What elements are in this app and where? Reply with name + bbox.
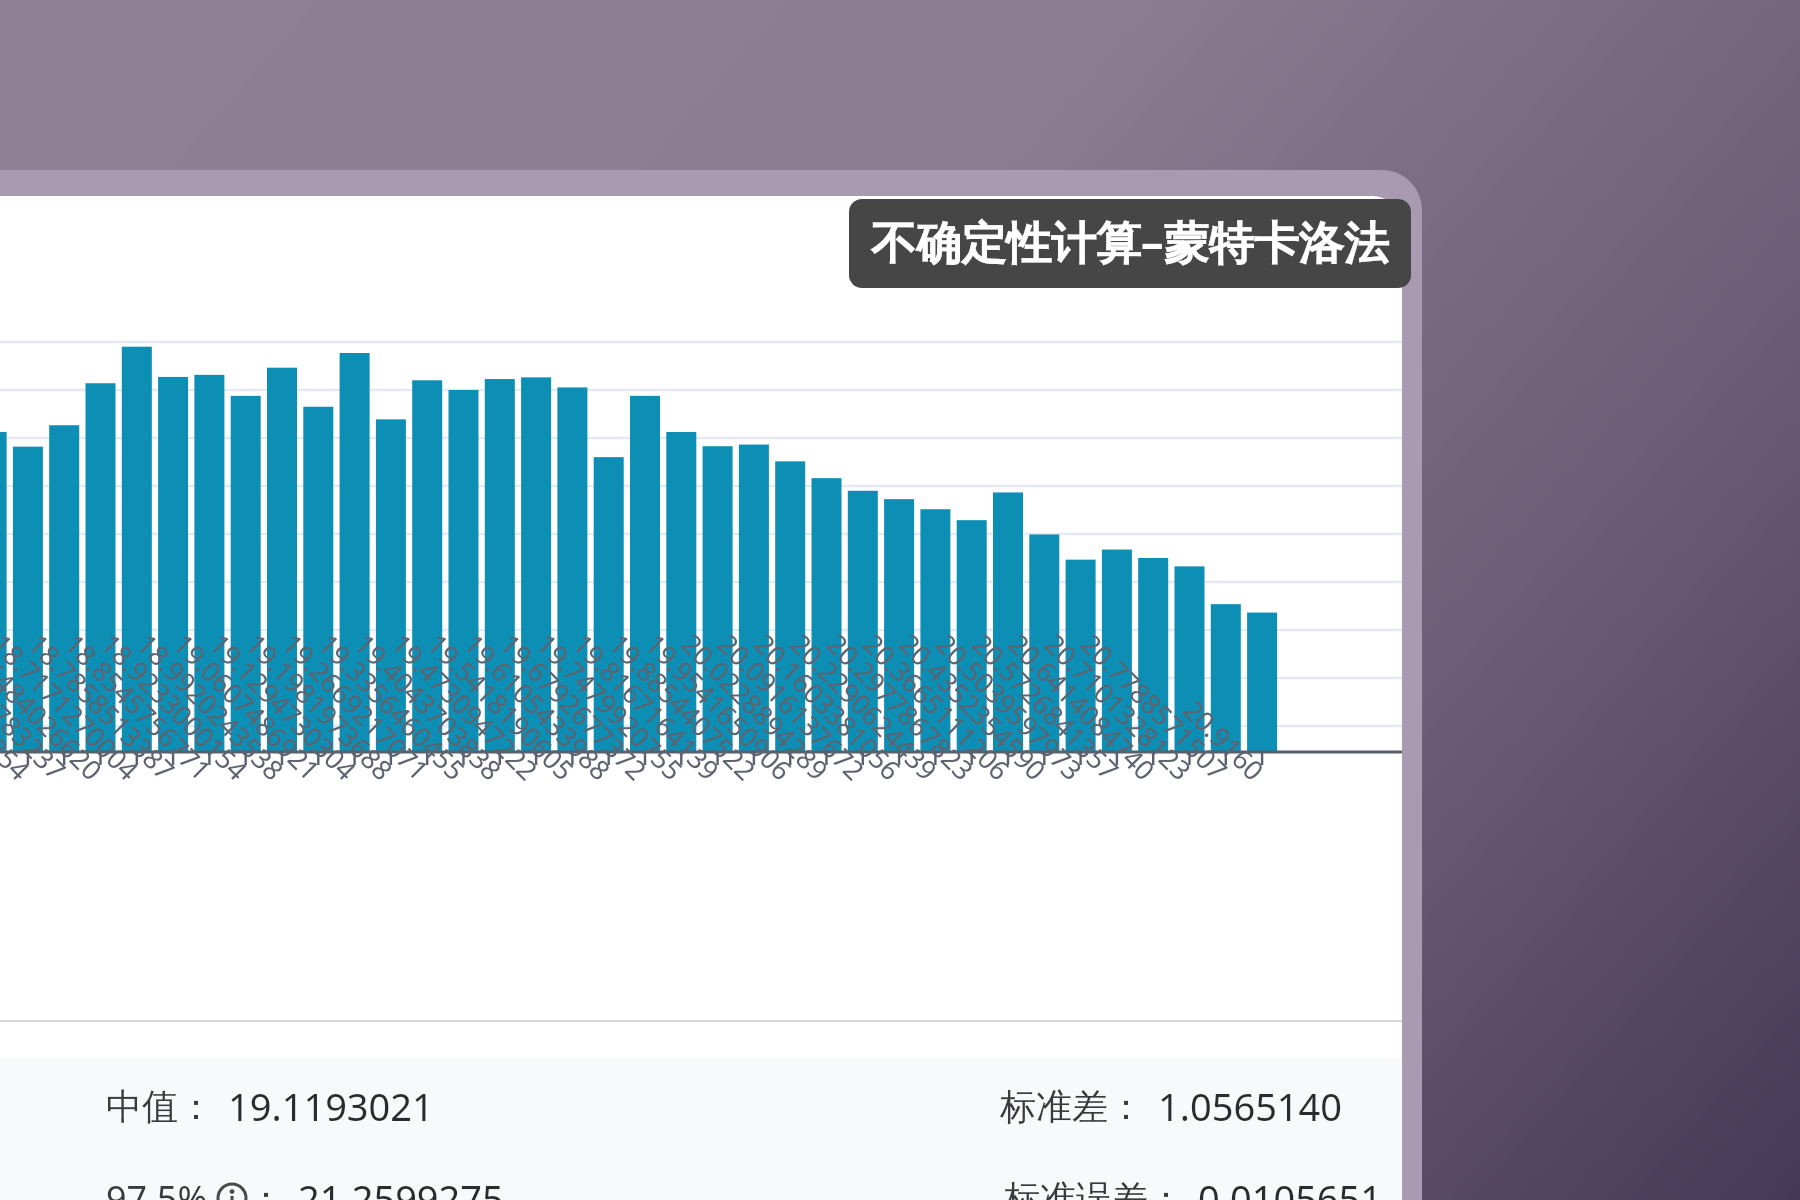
staticText: 0.0105651 [1198, 1172, 1383, 1200]
staticText: 21.2599275 [298, 1172, 504, 1200]
staticText: 1.0565140 [1158, 1080, 1343, 1132]
staticText: 中值： [106, 1084, 214, 1129]
button[interactable] [0, 196, 1402, 1020]
staticText: 标准差： [1000, 1084, 1144, 1129]
staticText: 不确定性计算–蒙特卡洛法 [871, 211, 1389, 272]
staticText: 97.5% [106, 1174, 208, 1200]
other: More information [216, 1182, 248, 1200]
staticText: 19.1193021 [228, 1080, 434, 1132]
staticText: ： [248, 1176, 284, 1200]
staticText: 标准误差： [1004, 1176, 1184, 1200]
button[interactable]: 不确定性计算–蒙特卡洛法 [849, 199, 1411, 288]
